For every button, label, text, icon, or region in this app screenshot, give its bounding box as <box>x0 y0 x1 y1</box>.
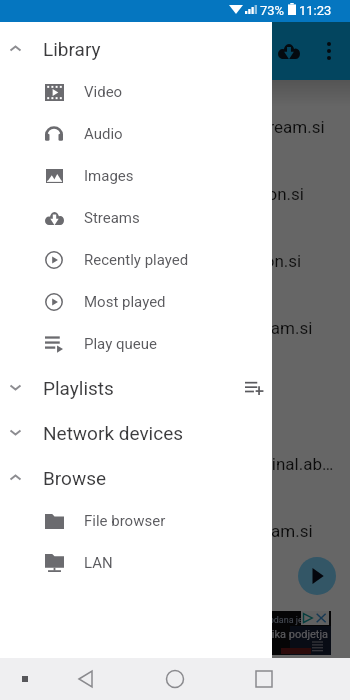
staticText: Recently played <box>84 251 189 269</box>
button[interactable]: Video <box>0 71 272 113</box>
staticText: Prodana je <box>260 615 303 626</box>
staticText: Playlists <box>43 377 114 399</box>
button[interactable]: Recently played <box>0 239 272 281</box>
staticText: http://icecast.radio.si:8000/stream.si <box>32 521 313 541</box>
staticText: http://www.radio-ognjisce.si/stream.si <box>23 318 313 338</box>
staticText: Video <box>84 83 123 101</box>
button[interactable]: http://icecast.radio.si:8000/stream.si <box>0 497 350 564</box>
staticText: Browse <box>43 467 107 489</box>
button[interactable]: Play <box>298 557 336 595</box>
button[interactable]: Images <box>0 155 272 197</box>
button[interactable]: Network devices <box>0 410 272 455</box>
button[interactable]: LAN <box>0 542 272 584</box>
staticText: velika podjetja <box>258 628 329 641</box>
button[interactable]: Advertisement <box>18 611 331 655</box>
staticText: Library <box>43 38 101 60</box>
staticText: 11:23 <box>299 3 332 18</box>
staticText: File browser <box>84 512 166 530</box>
button[interactable]: Streams <box>0 197 272 239</box>
button[interactable]: http://icecast.radio.si:8000/mystream.si <box>0 93 350 160</box>
staticText: Audio <box>84 125 123 143</box>
button[interactable]: File browser <box>0 500 272 542</box>
button[interactable]: http://live.radio.si:8000/radion.si <box>0 160 350 227</box>
button[interactable]: Download <box>265 27 313 75</box>
button[interactable]: Add playlist <box>233 367 275 409</box>
button[interactable]: Most played <box>0 281 272 323</box>
button[interactable]: http://radio.hit-si.net:8000/radion.si <box>0 227 350 294</box>
staticText: http://icecast.radio.si:8000/mystream.si <box>21 117 325 137</box>
button[interactable]: Library <box>0 26 272 71</box>
staticText: Most played <box>84 293 166 311</box>
staticText: http://live.radio.si:8000/radion.si <box>58 184 304 204</box>
staticText: Play queue <box>84 335 157 353</box>
button[interactable]: http://www.radio-ognjisce.si/stream.si <box>0 294 350 361</box>
staticText: Network devices <box>43 422 184 444</box>
button[interactable]: More options <box>305 27 350 75</box>
staticText: http://stream.si/radio-original.ab… <box>76 454 334 474</box>
staticText: Images <box>84 167 134 185</box>
button[interactable]: Playlists <box>0 365 272 410</box>
button[interactable]: Play queue <box>0 323 272 365</box>
button[interactable]: Audio <box>0 113 272 155</box>
staticText: LAN <box>84 554 113 572</box>
button[interactable]: http://stream.si/radio-original.ab… <box>0 430 350 497</box>
staticText: 73% <box>260 3 285 18</box>
staticText: Streams <box>84 209 140 227</box>
button[interactable]: Browse <box>0 455 272 500</box>
staticText: Streams <box>72 40 147 63</box>
other: Navigation bar <box>0 658 350 700</box>
staticText: http://radio.hit-si.net:8000/radion.si <box>33 251 302 271</box>
